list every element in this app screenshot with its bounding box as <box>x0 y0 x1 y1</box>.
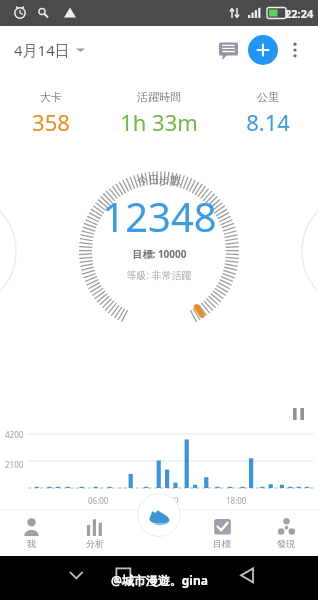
button[interactable]: 今日步數 <box>0 173 318 282</box>
staticText: 等級: 非常活躍 <box>126 268 192 282</box>
button[interactable]: 發現 <box>254 510 318 556</box>
staticText: 2100 <box>5 459 24 470</box>
button[interactable]: Add <box>248 35 278 65</box>
button[interactable]: 分析 <box>63 510 126 556</box>
staticText: 活躍時間 <box>137 90 181 104</box>
button[interactable]: 活躍時間 <box>101 88 217 139</box>
staticText: 06:00 <box>88 495 109 506</box>
staticText: 分析 <box>86 538 104 549</box>
staticText: 發現 <box>277 538 295 549</box>
button[interactable]: 公里 <box>217 88 318 139</box>
staticText: @城市漫遊。gina <box>111 572 208 588</box>
staticText: 4月14日 <box>14 40 70 60</box>
staticText: 目標 <box>213 538 231 549</box>
button[interactable]: Steps <box>137 493 181 537</box>
staticText: 4200 <box>5 429 24 440</box>
staticText: 1h 33m <box>120 107 198 137</box>
button[interactable]: Pause <box>284 400 312 428</box>
staticText: 12348 <box>102 189 217 243</box>
button[interactable]: Steps <box>126 510 190 556</box>
button[interactable]: 大卡 <box>0 88 101 139</box>
button[interactable]: More options <box>278 33 312 67</box>
staticText: 今日步數 <box>137 173 181 187</box>
button[interactable]: 4月14日 <box>12 36 87 64</box>
staticText: 12:00 <box>158 495 179 506</box>
staticText: 22:24 <box>285 6 314 21</box>
staticText: 公里 <box>257 90 279 104</box>
staticText: 358 <box>32 107 70 137</box>
button[interactable]: 我 <box>0 510 63 556</box>
staticText: 大卡 <box>40 90 62 104</box>
staticText: 我 <box>27 538 36 549</box>
staticText: 8.14 <box>246 107 290 137</box>
button[interactable]: Messages <box>210 32 246 68</box>
button[interactable]: 目標 <box>190 510 254 556</box>
staticText: 目標: 10000 <box>132 247 187 261</box>
staticText: 18:00 <box>226 495 247 506</box>
